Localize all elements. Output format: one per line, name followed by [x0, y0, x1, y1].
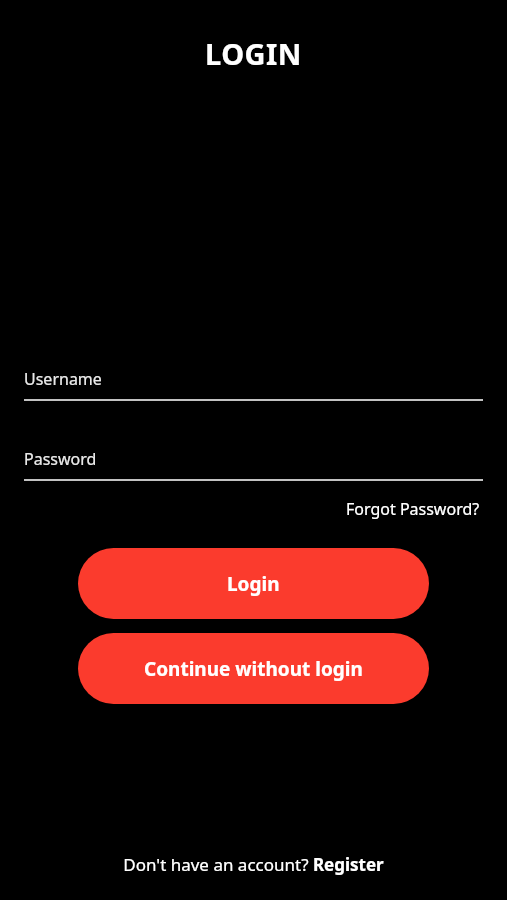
button[interactable]: Password: [24, 439, 483, 479]
button[interactable]: Forgot Password?: [343, 495, 483, 523]
button[interactable]: Don't have an account? Register: [117, 849, 390, 880]
staticText: LOGIN: [205, 34, 302, 73]
staticText: Login: [227, 571, 280, 597]
button[interactable]: Continue without login: [78, 633, 429, 704]
button[interactable]: Username: [24, 359, 483, 399]
staticText: Username: [24, 368, 102, 390]
staticText: Continue without login: [144, 656, 363, 682]
button[interactable]: Login: [78, 548, 429, 619]
staticText: Forgot Password?: [346, 498, 480, 520]
staticText: Don't have an account? Register: [123, 853, 384, 876]
staticText: Password: [24, 448, 97, 470]
